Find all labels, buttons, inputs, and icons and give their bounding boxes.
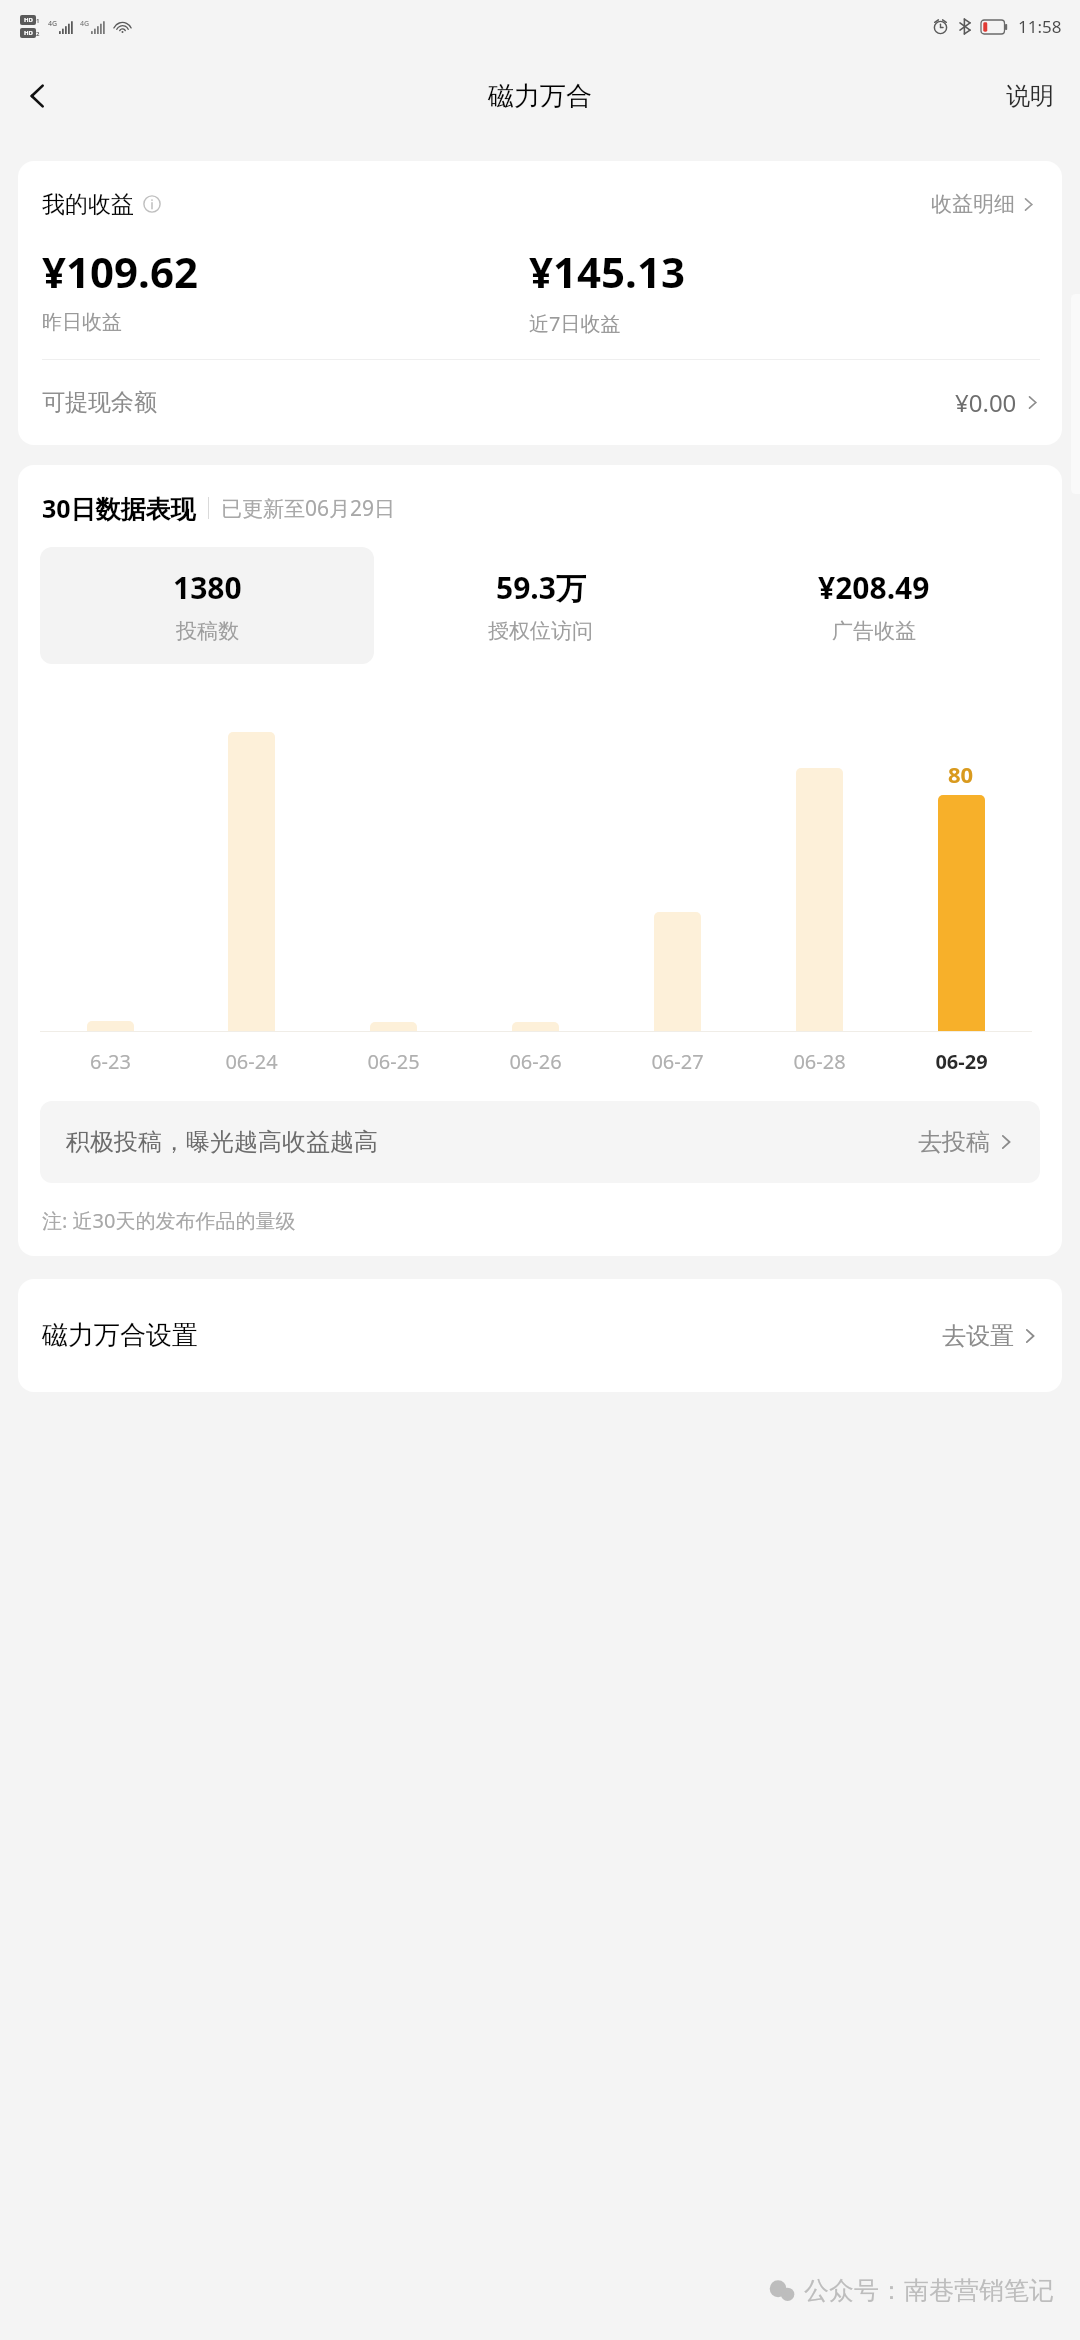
staticText: 积极投稿，曝光越高收益越高 — [66, 1127, 378, 1157]
staticText: 去投稿 — [918, 1127, 990, 1157]
staticText: 广告收益 — [832, 618, 916, 644]
staticText: 近7日收益 — [529, 310, 621, 337]
staticText: ¥109.62 — [42, 243, 198, 300]
staticText: 06-27 — [651, 1048, 704, 1075]
button[interactable]: 收益明细 — [927, 187, 1040, 221]
button[interactable]: 59.3万 — [374, 547, 707, 664]
staticText: HD — [24, 16, 33, 24]
staticText: 我的收益 — [42, 190, 134, 219]
button[interactable]: 说明 — [998, 71, 1062, 121]
staticText: 4G — [48, 19, 58, 29]
staticText: 说明 — [1006, 81, 1054, 111]
staticText: 1 — [36, 17, 40, 25]
staticText: 1380 — [173, 567, 242, 608]
staticText: 6-23 — [90, 1048, 131, 1075]
staticText: ¥145.13 — [529, 243, 685, 300]
staticText: 06-29 — [935, 1048, 988, 1075]
staticText: 公众号：南巷营销笔记 — [804, 2275, 1054, 2306]
staticText: HD — [24, 29, 33, 37]
staticText: 已更新至06月29日 — [221, 494, 396, 523]
staticText: 磁力万合设置 — [42, 1319, 198, 1352]
staticText: 59.3万 — [496, 567, 586, 608]
staticText: 11:58 — [1018, 15, 1062, 38]
button[interactable]: ¥208.49 — [707, 547, 1040, 664]
button[interactable]: 1380 — [40, 547, 374, 664]
staticText: 30日数据表现 — [42, 491, 196, 525]
button[interactable]: 可提现余额 — [42, 360, 1040, 423]
staticText: ¥0.00 — [955, 386, 1017, 419]
staticText: 06-26 — [509, 1048, 562, 1075]
staticText: 投稿数 — [176, 618, 239, 644]
staticText: 06-25 — [367, 1048, 420, 1075]
button[interactable]: 磁力万合设置 — [18, 1279, 1062, 1392]
button[interactable]: 积极投稿，曝光越高收益越高 — [40, 1101, 1040, 1183]
staticText: 去设置 — [942, 1321, 1014, 1351]
staticText: 4G — [80, 19, 90, 29]
staticText: 昨日收益 — [42, 310, 122, 335]
staticText: 06-24 — [225, 1048, 278, 1075]
button[interactable]: Back — [10, 68, 66, 124]
staticText: 授权位访问 — [488, 618, 593, 644]
staticText: 注: 近30天的发布作品的量级 — [42, 1207, 296, 1234]
staticText: 可提现余额 — [42, 388, 157, 417]
button[interactable]: Info — [142, 194, 162, 214]
staticText: 磁力万合 — [488, 80, 592, 113]
staticText: 80 — [948, 759, 974, 789]
staticText: ¥208.49 — [818, 567, 930, 608]
staticText: 06-28 — [793, 1048, 846, 1075]
staticText: 2 — [36, 30, 40, 38]
staticText: 收益明细 — [931, 191, 1015, 217]
